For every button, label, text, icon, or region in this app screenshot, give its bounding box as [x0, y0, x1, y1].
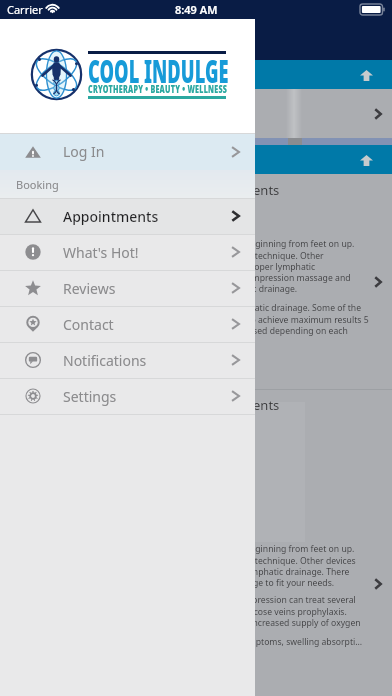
staticText: Compression Garments	[135, 181, 280, 199]
button[interactable]: Compression Garments	[0, 390, 392, 696]
other: Collapse	[360, 60, 373, 89]
staticText: Compression garment beginning from feet …	[152, 543, 356, 588]
button[interactable]: Collapse	[0, 145, 392, 174]
button[interactable]: Log In	[0, 133, 255, 170]
staticText: Contact	[63, 315, 114, 334]
staticText: reduction of swelling symptoms, swelling…	[152, 636, 363, 648]
staticText: Log In	[63, 142, 105, 161]
staticText: CRYOTHERAPY • BEAUTY • WELLNESS	[88, 82, 228, 95]
other: Collapse	[360, 145, 373, 174]
button[interactable]: Contact	[0, 306, 255, 342]
staticText: COOL INDULGE	[88, 49, 229, 93]
staticText: Lymphatic drainage compression can treat…	[152, 594, 361, 628]
button[interactable]: Collapse	[0, 60, 392, 89]
staticText: Appointments	[63, 207, 159, 226]
staticText: Reviews	[63, 279, 116, 298]
button[interactable]: Reviews	[0, 270, 255, 306]
button[interactable]: Settings	[0, 378, 255, 414]
button[interactable]: Compression Garments	[0, 174, 392, 389]
staticText: 8:49 AM	[175, 2, 218, 17]
staticText: Settings	[63, 387, 117, 406]
staticText: Notifications	[63, 351, 147, 370]
staticText: Compression garment beginning from feet …	[152, 238, 355, 294]
staticText: Carrier	[7, 2, 43, 17]
button[interactable]: What's Hot!	[0, 234, 255, 270]
staticText: Booking	[16, 177, 59, 192]
button[interactable]: Appointments	[0, 198, 255, 234]
staticText: Compression Garments	[135, 396, 280, 414]
staticText: Many people need lymphatic drainage. Som…	[152, 302, 369, 336]
button[interactable]: Notifications	[0, 342, 255, 378]
staticText: What's Hot!	[63, 243, 139, 262]
button[interactable]	[0, 89, 392, 138]
